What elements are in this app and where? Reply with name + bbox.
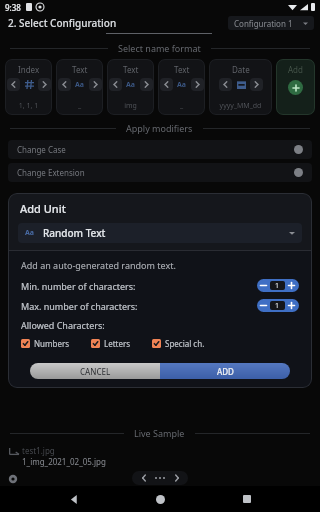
- button[interactable]: Change Case: [8, 140, 312, 159]
- staticText: Apply modifiers: [126, 122, 193, 134]
- button[interactable]: Next: [89, 78, 102, 91]
- staticText: Numbers: [34, 338, 70, 349]
- staticText: Aa: [126, 80, 136, 90]
- button[interactable]: Increase: [285, 299, 298, 312]
- staticText: 1_img_2021_02_05.jpg: [22, 456, 106, 467]
- staticText: Add Unit: [20, 201, 66, 216]
- staticText: Select name format: [118, 42, 201, 54]
- button[interactable]: Increase: [285, 279, 298, 292]
- staticText: Index: [18, 64, 40, 75]
- staticText: _: [158, 101, 205, 111]
- staticText: Add an auto-generated random text.: [21, 259, 176, 271]
- staticText: _: [56, 101, 103, 111]
- staticText: 1: [275, 281, 280, 290]
- button[interactable]: Add name format unit: [276, 59, 315, 115]
- button[interactable]: Letters: [91, 337, 131, 350]
- button[interactable]: Previous: [7, 78, 20, 91]
- button[interactable]: Previous: [219, 78, 232, 91]
- staticText: Configuration 1: [234, 18, 293, 29]
- staticText: Change Extension: [17, 167, 85, 178]
- staticText: Allowed Characters:: [21, 319, 105, 331]
- staticText: Letters: [104, 338, 131, 349]
- staticText: 1: [275, 301, 280, 310]
- staticText: yyyy_MM_dd: [209, 101, 272, 111]
- button[interactable]: Decrease: [257, 279, 270, 292]
- staticText: Text: [174, 64, 190, 75]
- button[interactable]: Previous: [160, 78, 173, 91]
- button[interactable]: Next sample: [171, 472, 183, 484]
- staticText: Max. number of characters:: [21, 300, 138, 312]
- staticText: 9:38: [5, 2, 21, 13]
- button[interactable]: CANCEL: [30, 363, 160, 379]
- staticText: Live Sample: [134, 427, 185, 439]
- button[interactable]: Index: [5, 59, 52, 115]
- staticText: Aa: [75, 80, 85, 90]
- button[interactable]: Previous: [58, 78, 71, 91]
- staticText: Text: [123, 64, 139, 75]
- staticText: 1, 1, 1: [5, 101, 52, 111]
- button[interactable]: ADD: [160, 363, 290, 379]
- staticText: Aa: [177, 80, 187, 90]
- button[interactable]: Text: [158, 59, 205, 115]
- staticText: Min. number of characters:: [21, 280, 136, 292]
- staticText: 2. Select Configuration: [8, 16, 117, 30]
- button[interactable]: Date: [209, 59, 272, 115]
- button[interactable]: Next: [38, 78, 51, 91]
- staticText: Text: [72, 64, 88, 75]
- button[interactable]: Numbers: [21, 337, 70, 350]
- button[interactable]: Aa: [18, 223, 302, 243]
- button[interactable]: Recents: [234, 486, 260, 512]
- button[interactable]: Configuration 1: [228, 16, 314, 30]
- staticText: CANCEL: [80, 366, 111, 377]
- button[interactable]: Previous: [109, 78, 122, 91]
- button[interactable]: Previous sample: [138, 472, 150, 484]
- button[interactable]: Next: [140, 78, 153, 91]
- staticText: Aa: [25, 228, 35, 238]
- staticText: Add: [288, 64, 303, 75]
- staticText: Change Case: [17, 144, 66, 155]
- staticText: ADD: [217, 366, 234, 377]
- staticText: Date: [232, 64, 250, 75]
- button[interactable]: Settings: [7, 473, 18, 484]
- staticText: img: [107, 101, 154, 111]
- button[interactable]: Text: [56, 59, 103, 115]
- button[interactable]: Change Extension: [8, 163, 312, 182]
- button[interactable]: Home: [147, 486, 173, 512]
- staticText: Special ch.: [165, 338, 205, 349]
- staticText: test1.jpg: [22, 445, 55, 456]
- button[interactable]: Text: [107, 59, 154, 115]
- button[interactable]: Next: [191, 78, 204, 91]
- button[interactable]: Special ch.: [152, 337, 205, 350]
- button[interactable]: Next: [250, 78, 263, 91]
- button[interactable]: Back: [61, 486, 87, 512]
- button[interactable]: Decrease: [257, 299, 270, 312]
- staticText: Random Text: [43, 226, 106, 240]
